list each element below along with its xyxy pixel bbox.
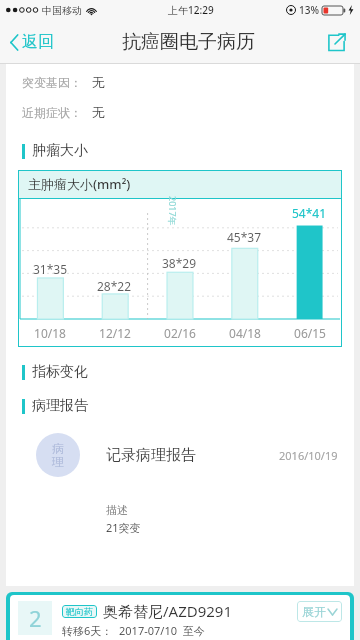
staticText: 10/18 bbox=[34, 325, 66, 341]
staticText: 无 bbox=[92, 104, 105, 120]
staticText: 返回 bbox=[22, 32, 54, 52]
staticText: 描述 bbox=[106, 503, 128, 517]
staticText: 中国移动 bbox=[42, 4, 82, 17]
staticText: 肿瘤大小 bbox=[32, 142, 88, 160]
button[interactable]: 病 理 bbox=[6, 429, 354, 481]
staticText: 02/16 bbox=[164, 325, 196, 341]
staticText: 展开 bbox=[302, 604, 326, 619]
staticText: 病 理 bbox=[52, 441, 64, 469]
staticText: 28*22 bbox=[97, 278, 132, 294]
staticText: 抗癌圈电子病历 bbox=[122, 30, 255, 54]
button[interactable]: 2 bbox=[6, 592, 354, 640]
staticText: 主肿瘤大小(mm²) bbox=[28, 175, 131, 193]
staticText: 上午12:29 bbox=[168, 3, 214, 17]
staticText: 转移6天： bbox=[62, 623, 113, 638]
staticText: 12/12 bbox=[99, 325, 131, 341]
staticText: 2017年 bbox=[167, 196, 179, 226]
staticText: 06/15 bbox=[294, 325, 326, 341]
staticText: 2016/10/19 bbox=[279, 448, 338, 463]
staticText: 31*35 bbox=[33, 261, 68, 277]
staticText: 靶向药 bbox=[66, 606, 93, 617]
staticText: 病理报告 bbox=[32, 397, 88, 415]
button[interactable]: 展开 bbox=[297, 601, 342, 622]
staticText: 45*37 bbox=[227, 229, 262, 245]
staticText: 21突变 bbox=[106, 520, 141, 535]
staticText: 04/18 bbox=[229, 325, 261, 341]
staticText: 近期症状： bbox=[22, 105, 82, 120]
staticText: 突变基因： bbox=[22, 75, 82, 90]
button[interactable]: Share bbox=[313, 23, 360, 62]
staticText: 54*41 bbox=[292, 205, 327, 221]
staticText: 38*29 bbox=[162, 255, 197, 271]
staticText: 记录病理报告 bbox=[106, 446, 196, 465]
staticText: 2 bbox=[29, 603, 42, 633]
staticText: 13% bbox=[299, 3, 319, 17]
staticText: 指标变化 bbox=[32, 363, 88, 381]
button[interactable]: 返回 bbox=[0, 26, 64, 58]
staticText: 无 bbox=[92, 74, 105, 90]
staticText: 奥希替尼/AZD9291 bbox=[103, 601, 233, 621]
staticText: 2017-07/10 至今 bbox=[119, 623, 205, 638]
